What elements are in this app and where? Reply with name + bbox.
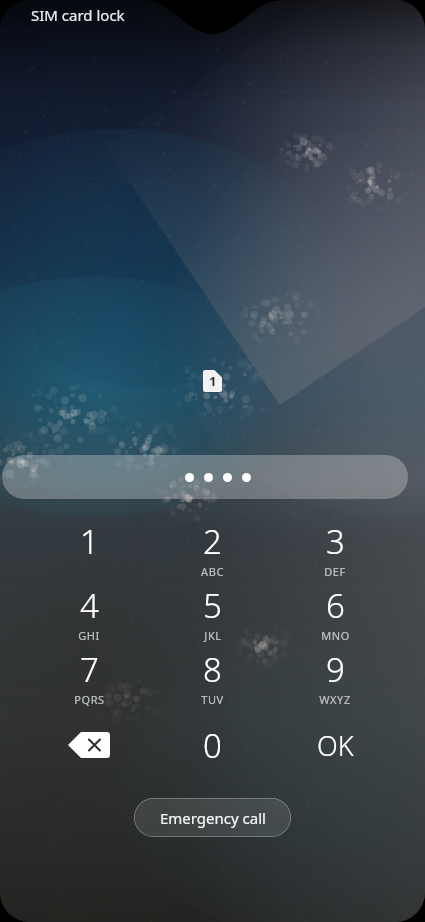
button[interactable]: 5	[160, 583, 264, 645]
staticText: 8	[203, 647, 222, 692]
staticText: 2	[203, 519, 222, 564]
button[interactable]: OK	[283, 714, 387, 776]
staticText: ABC	[201, 564, 224, 579]
staticText: JKL	[204, 628, 222, 643]
button[interactable]: 4	[37, 583, 141, 645]
button[interactable]: 2	[160, 519, 264, 581]
staticText: 5	[203, 583, 222, 628]
staticText: 6	[326, 583, 345, 628]
staticText: PQRS	[74, 692, 105, 707]
button[interactable]: 0	[160, 714, 264, 776]
staticText: SIM card lock	[31, 5, 125, 25]
staticText: 9	[326, 647, 345, 692]
button[interactable]: 3	[283, 519, 387, 581]
staticText: MNO	[321, 628, 350, 643]
staticText: 1	[209, 372, 217, 390]
staticText: 0	[203, 723, 222, 768]
staticText: 1	[80, 519, 99, 564]
staticText: Emergency call	[160, 808, 266, 828]
staticText: TUV	[201, 692, 224, 707]
staticText: GHI	[78, 628, 100, 643]
staticText: 4	[80, 583, 99, 628]
staticText: 7	[80, 647, 99, 692]
button[interactable]	[2, 455, 408, 499]
button[interactable]: 7	[37, 647, 141, 709]
staticText: 3	[326, 519, 345, 564]
button[interactable]: Backspace	[37, 714, 141, 776]
button[interactable]: 9	[283, 647, 387, 709]
button[interactable]: Emergency call	[134, 798, 291, 837]
staticText: OK	[317, 727, 354, 764]
button[interactable]: 8	[160, 647, 264, 709]
button[interactable]: 6	[283, 583, 387, 645]
staticText: DEF	[324, 564, 346, 579]
staticText: WXYZ	[319, 692, 351, 707]
button[interactable]: 1	[37, 519, 141, 581]
